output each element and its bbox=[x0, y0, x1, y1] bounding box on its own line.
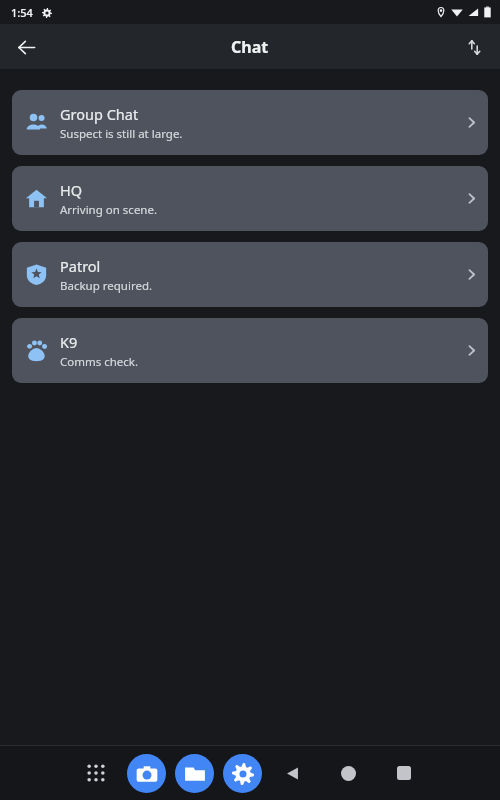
button[interactable]: Camera bbox=[127, 754, 166, 793]
button[interactable]: Files bbox=[175, 754, 214, 793]
button[interactable]: Sort bbox=[457, 30, 491, 64]
button[interactable]: Recents bbox=[387, 756, 421, 790]
staticText: Group Chat bbox=[60, 104, 139, 124]
staticText: K9 bbox=[60, 332, 78, 352]
button[interactable]: All apps bbox=[81, 758, 111, 788]
button[interactable]: Group Chat bbox=[12, 90, 488, 155]
staticText: Backup required. bbox=[60, 278, 153, 294]
button[interactable]: HQ bbox=[12, 166, 488, 231]
button[interactable]: Settings bbox=[223, 754, 262, 793]
button[interactable]: Home bbox=[331, 756, 365, 790]
staticText: Patrol bbox=[60, 256, 101, 276]
staticText: Comms check. bbox=[60, 354, 139, 370]
button[interactable]: Patrol bbox=[12, 242, 488, 307]
staticText: 1:54 bbox=[11, 5, 33, 20]
staticText: Suspect is still at large. bbox=[60, 126, 183, 142]
staticText: HQ bbox=[60, 180, 83, 200]
button[interactable]: Back bbox=[275, 756, 309, 790]
button[interactable]: Back bbox=[7, 28, 45, 66]
staticText: Chat bbox=[231, 36, 269, 58]
button[interactable]: K9 bbox=[12, 318, 488, 383]
staticText: Arriving on scene. bbox=[60, 202, 158, 218]
